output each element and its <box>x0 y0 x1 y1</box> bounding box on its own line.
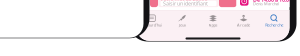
staticText: Jeux <box>179 22 186 28</box>
button[interactable]: Arcade <box>228 13 259 29</box>
staticText: Denis Marchal <box>253 1 279 6</box>
staticText: De 14:00 à 16:00 <box>253 0 292 3</box>
staticText: Aujourd'hui <box>142 22 162 28</box>
button[interactable]: Jeux <box>167 13 198 29</box>
button[interactable]: Apps <box>198 13 228 29</box>
button[interactable]: Recherche <box>259 13 289 29</box>
staticText: Apps <box>208 22 217 28</box>
staticText: Arcade <box>237 22 250 28</box>
staticText: votre mot de passe <box>160 0 207 2</box>
button[interactable]: Aujourd'hui <box>136 13 167 29</box>
staticText: Saisir un identifiant <box>163 0 208 7</box>
staticText: Recherche <box>265 22 283 28</box>
